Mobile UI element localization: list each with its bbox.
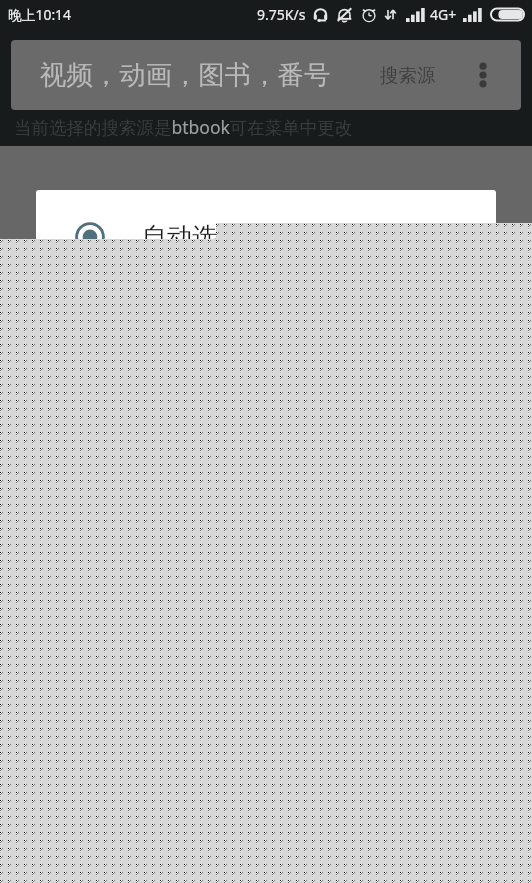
staticText: 搜索源 bbox=[380, 64, 436, 87]
staticText: 4G+ bbox=[430, 5, 457, 24]
staticText: 当前选择的搜索源是btbook可在菜单中更改 bbox=[14, 115, 353, 139]
staticText: 自动选择 bbox=[142, 221, 242, 252]
button[interactable]: 搜索源 bbox=[371, 52, 445, 99]
staticText: 9.75K/s bbox=[257, 5, 306, 24]
button[interactable]: More options bbox=[445, 40, 521, 110]
staticText: 晚上10:14 bbox=[8, 5, 71, 24]
staticText: 视频，动画，图书，番号 bbox=[40, 59, 331, 92]
